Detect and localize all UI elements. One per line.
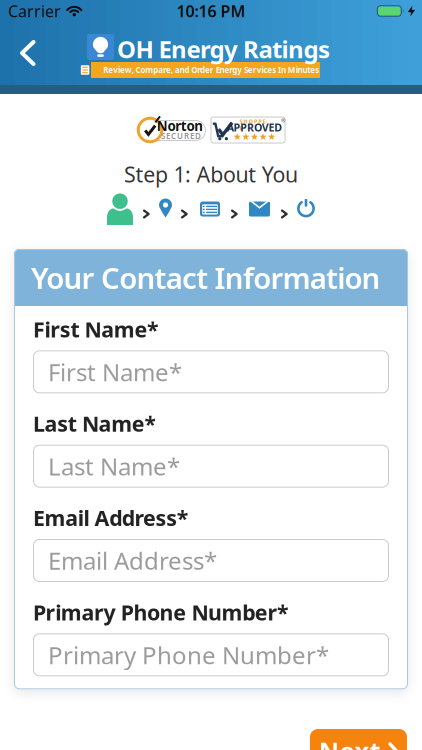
staticText: Last Name* [48, 450, 180, 482]
button[interactable]: Last Name* [33, 445, 389, 488]
staticText: Norton [157, 117, 203, 135]
staticText: First Name* [48, 356, 182, 388]
staticText: OH Energy Ratings [117, 33, 330, 65]
button[interactable]: First Name* [33, 350, 389, 393]
staticText: Carrier [8, 0, 61, 22]
button[interactable]: OH Energy Ratings [87, 34, 323, 78]
staticText: Primary Phone Number* [33, 598, 289, 626]
staticText: 10:16 PM [176, 0, 245, 22]
staticText: SECURED [161, 130, 201, 141]
staticText: Primary Phone Number* [48, 639, 329, 671]
staticText: Email Address* [48, 545, 217, 576]
staticText: SHOPPER [239, 118, 270, 125]
staticText: Email Address* [33, 504, 189, 532]
staticText: First Name* [33, 315, 159, 343]
staticText: Step 1: About You [124, 160, 298, 188]
button[interactable]: Email Address* [33, 539, 389, 582]
staticText: Review, Compare, and Order Energy Servic… [103, 65, 319, 75]
staticText: Last Name* [33, 409, 156, 438]
staticText: Next [318, 734, 380, 750]
button[interactable]: Next [310, 729, 407, 750]
staticText: ® [281, 117, 285, 124]
staticText: APPROVED [227, 120, 282, 134]
button[interactable]: Primary Phone Number* [33, 633, 389, 676]
button[interactable]: Back [0, 26, 50, 80]
staticText: Your Contact Information [31, 258, 381, 297]
